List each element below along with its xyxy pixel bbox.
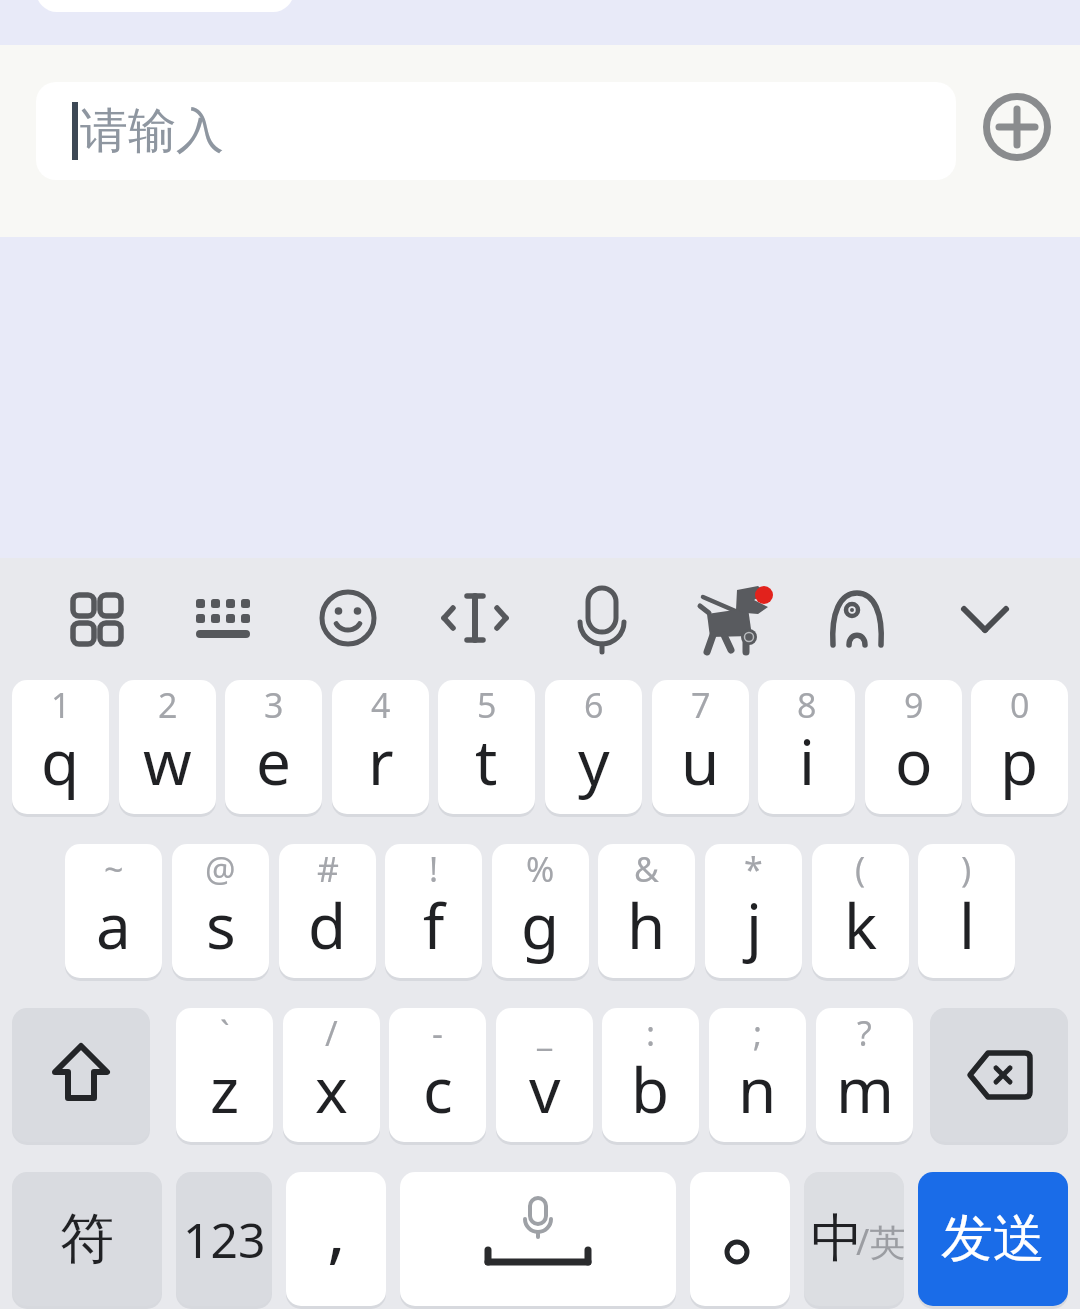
staticText: p [1000, 719, 1039, 803]
staticText: 8 [797, 682, 817, 728]
staticText: c [423, 1047, 453, 1131]
button[interactable] [440, 584, 510, 654]
staticText: / [325, 1010, 338, 1056]
button[interactable]: 2 [119, 680, 216, 814]
staticText: w [143, 719, 192, 803]
button[interactable]: ; [709, 1008, 806, 1142]
staticText: g [521, 883, 560, 967]
button[interactable] [930, 1008, 1068, 1142]
staticText: ? [857, 1010, 872, 1056]
button[interactable]: ) [918, 844, 1015, 978]
staticText: 0 [1010, 682, 1030, 728]
staticText: u [681, 719, 720, 803]
staticText: m [836, 1047, 894, 1131]
button[interactable] [568, 582, 636, 650]
staticText: q [41, 719, 80, 803]
staticText: j [746, 883, 762, 967]
button[interactable]: 0 [971, 680, 1068, 814]
button[interactable]: - [389, 1008, 486, 1142]
button[interactable]: ` [176, 1008, 273, 1142]
staticText: y [578, 719, 610, 803]
button[interactable] [694, 580, 780, 666]
staticText: i [799, 719, 815, 803]
button[interactable]: ! [385, 844, 482, 978]
button[interactable]: ? [816, 1008, 913, 1142]
staticText: z [210, 1047, 240, 1131]
button[interactable]: ~ [65, 844, 162, 978]
staticText: x [315, 1047, 348, 1131]
staticText: 6 [584, 682, 604, 728]
staticText: a [96, 883, 131, 967]
button[interactable]: 8 [758, 680, 855, 814]
staticText: 3 [264, 682, 284, 728]
staticText: k [844, 883, 878, 967]
button[interactable] [690, 1172, 790, 1306]
button[interactable]: 5 [438, 680, 535, 814]
button[interactable]: # [279, 844, 376, 978]
staticText: , [327, 1181, 346, 1276]
staticText: 1 [51, 682, 71, 728]
staticText: 请输入 [80, 101, 224, 161]
staticText: 符 [60, 1205, 114, 1273]
staticText: r [368, 719, 394, 803]
button[interactable] [950, 592, 1020, 662]
staticText: @ [205, 846, 236, 892]
staticText: n [738, 1047, 777, 1131]
button[interactable]: : [602, 1008, 699, 1142]
staticText: - [432, 1010, 443, 1056]
button[interactable]: , [286, 1172, 386, 1306]
button[interactable]: 请输入 [36, 82, 956, 180]
staticText: ` [220, 1010, 230, 1056]
staticText: f [423, 883, 445, 967]
staticText: e [256, 719, 291, 803]
staticText: 4 [371, 682, 391, 728]
button[interactable]: _ [496, 1008, 593, 1142]
staticText: /英 [856, 1217, 904, 1266]
button[interactable]: 4 [332, 680, 429, 814]
staticText: % [526, 846, 555, 892]
button[interactable] [826, 586, 888, 648]
button[interactable]: / [283, 1008, 380, 1142]
staticText: t [475, 719, 498, 803]
button[interactable]: 发送 [918, 1172, 1068, 1306]
button[interactable] [188, 582, 258, 652]
staticText: ( [855, 846, 866, 892]
button[interactable]: 9 [865, 680, 962, 814]
staticText: h [627, 883, 666, 967]
staticText: s [206, 883, 236, 967]
button[interactable] [12, 1008, 150, 1142]
button[interactable]: * [705, 844, 802, 978]
staticText: b [631, 1047, 670, 1131]
staticText: # [317, 846, 339, 892]
staticText: 中 [811, 1206, 863, 1272]
staticText: * [744, 846, 763, 892]
button[interactable] [980, 90, 1054, 164]
button[interactable]: 中 [804, 1172, 904, 1306]
button[interactable]: % [492, 844, 589, 978]
staticText: & [634, 846, 659, 892]
button[interactable]: ( [812, 844, 909, 978]
staticText: 9 [904, 682, 924, 728]
staticText: 123 [183, 1207, 266, 1272]
button[interactable]: 7 [652, 680, 749, 814]
staticText: ; [753, 1010, 763, 1056]
button[interactable]: & [598, 844, 695, 978]
staticText: 5 [477, 682, 497, 728]
button[interactable] [400, 1172, 676, 1306]
staticText: ~ [104, 846, 124, 892]
staticText: l [959, 883, 975, 967]
staticText: : [646, 1010, 656, 1056]
button[interactable]: @ [172, 844, 269, 978]
button[interactable] [58, 582, 134, 658]
staticText: 2 [158, 682, 178, 728]
button[interactable] [314, 584, 382, 652]
staticText: o [895, 719, 933, 803]
staticText: ! [429, 846, 439, 892]
button[interactable]: 符 [12, 1172, 162, 1306]
staticText: ) [961, 846, 972, 892]
button[interactable]: 3 [225, 680, 322, 814]
button[interactable]: 123 [176, 1172, 272, 1306]
button[interactable]: 1 [12, 680, 109, 814]
staticText: 7 [691, 682, 711, 728]
button[interactable]: 6 [545, 680, 642, 814]
